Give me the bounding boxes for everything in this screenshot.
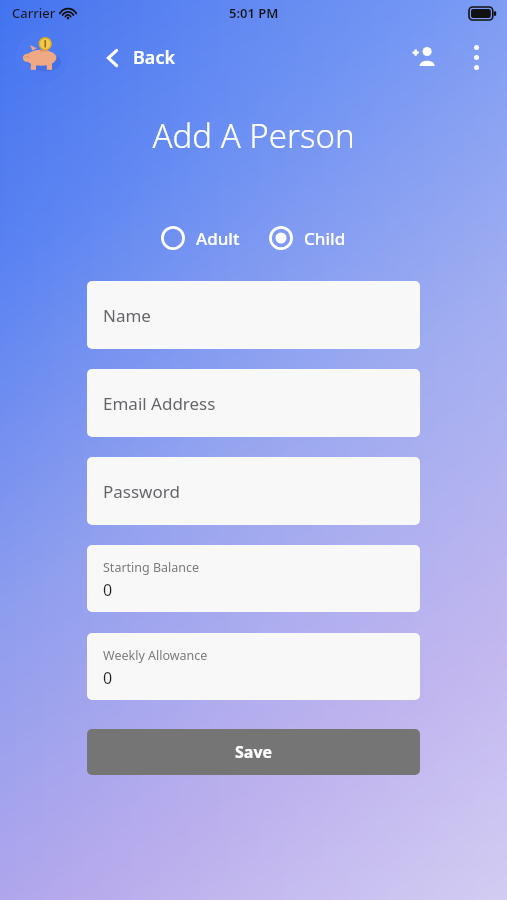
staticText: Save [235,741,273,763]
button[interactable]: App logo [16,31,68,83]
staticText: Child [304,227,346,250]
button[interactable]: Name [87,281,420,349]
staticText: Email Address [103,392,216,415]
staticText: Back [133,45,176,70]
button[interactable]: Back [98,39,184,76]
staticText: Add A Person [0,113,507,158]
staticText: Carrier [12,4,56,22]
staticText: Adult [196,227,240,250]
staticText: Name [103,304,151,327]
button[interactable]: Adult [157,220,244,256]
button[interactable]: Password [87,457,420,525]
staticText: Starting Balance [103,559,200,576]
button[interactable]: Child [265,220,350,256]
staticText: 0 [103,667,113,689]
button[interactable]: Email Address [87,369,420,437]
staticText: 0 [103,579,113,601]
staticText: 5:01 PM [229,4,279,22]
button[interactable]: Starting Balance [87,545,420,612]
button[interactable]: Save [87,729,420,775]
staticText: Password [103,480,180,503]
button[interactable]: Add person [401,34,447,80]
staticText: Weekly Allowance [103,647,208,664]
button[interactable]: Weekly Allowance [87,633,420,700]
button[interactable]: More options [455,36,497,78]
